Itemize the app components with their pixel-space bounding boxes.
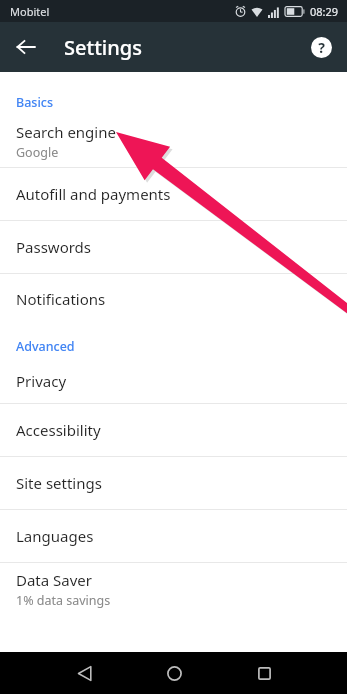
staticText: Data Saver — [16, 570, 93, 590]
staticText: Mobitel — [10, 4, 50, 19]
button[interactable]: Help — [303, 29, 339, 65]
staticText: 1% data savings — [16, 592, 111, 609]
button[interactable]: Back — [64, 653, 104, 693]
button[interactable]: Autofill and payments — [0, 168, 347, 220]
staticText: Languages — [16, 526, 94, 546]
button[interactable]: Privacy — [0, 359, 347, 403]
button[interactable]: Passwords — [0, 221, 347, 273]
staticText: Search engine — [16, 122, 116, 142]
button[interactable]: Site settings — [0, 457, 347, 509]
staticText: Settings — [64, 34, 142, 61]
staticText: Google — [16, 144, 59, 161]
button[interactable]: Back — [6, 27, 46, 67]
button[interactable]: Search engine — [0, 115, 347, 167]
staticText: Accessibility — [16, 420, 101, 440]
staticText: Passwords — [16, 237, 92, 257]
staticText: Advanced — [16, 338, 75, 355]
staticText: Privacy — [16, 371, 67, 391]
staticText: ? — [318, 38, 325, 57]
button[interactable]: Data Saver — [0, 563, 347, 615]
staticText: 08:29 — [310, 4, 339, 19]
button[interactable]: Accessibility — [0, 404, 347, 456]
button[interactable]: Home — [154, 653, 194, 693]
staticText: Site settings — [16, 473, 102, 493]
staticText: Notifications — [16, 289, 106, 309]
button[interactable]: Languages — [0, 510, 347, 562]
button[interactable]: Notifications — [0, 274, 347, 324]
staticText: Basics — [16, 94, 53, 111]
staticText: Autofill and payments — [16, 184, 171, 204]
button[interactable]: Recent apps — [244, 653, 284, 693]
